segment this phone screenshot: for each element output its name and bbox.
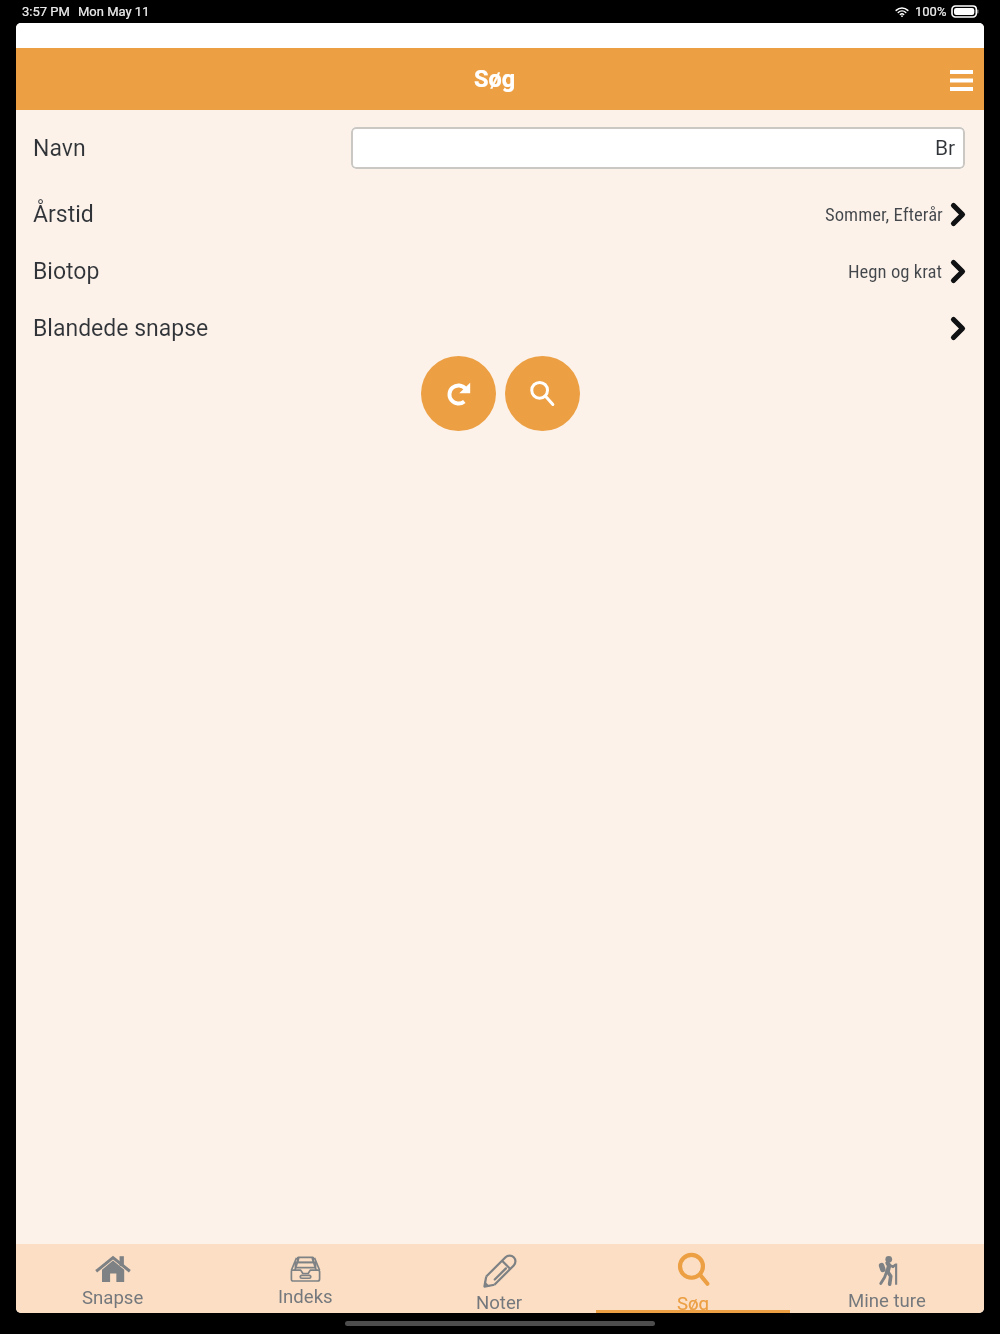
button[interactable]: Mine ture — [790, 1244, 984, 1313]
button[interactable]: Biotop — [16, 243, 984, 300]
button[interactable]: Noter — [402, 1244, 596, 1313]
button[interactable]: Reset — [421, 356, 496, 431]
staticText: 3:57 PM — [22, 4, 70, 19]
staticText: Årstid — [33, 201, 94, 228]
button[interactable]: Menu — [941, 59, 981, 99]
staticText: 100% — [915, 4, 947, 19]
button[interactable]: Blandede snapse — [16, 300, 984, 357]
staticText: Blandede snapse — [33, 315, 209, 342]
button[interactable]: Snapse — [16, 1244, 209, 1313]
staticText: Biotop — [33, 258, 100, 285]
staticText: Sommer, Efterår — [825, 204, 943, 226]
button[interactable]: Search — [505, 356, 580, 431]
staticText: Mon May 11 — [78, 4, 150, 19]
staticText: Noter — [476, 1292, 523, 1313]
button[interactable]: Søg — [596, 1244, 790, 1313]
staticText: Søg — [677, 1293, 710, 1313]
staticText: Hegn og krat — [848, 261, 943, 283]
staticText: Br — [935, 136, 956, 161]
staticText: Snapse — [82, 1287, 144, 1309]
staticText: Mine ture — [848, 1290, 926, 1312]
button[interactable]: Årstid — [16, 186, 984, 243]
button[interactable]: Indeks — [209, 1244, 402, 1313]
staticText: Navn — [33, 135, 86, 162]
staticText: Søg — [474, 65, 516, 93]
button[interactable]: Br — [351, 127, 965, 169]
staticText: Indeks — [278, 1286, 333, 1308]
